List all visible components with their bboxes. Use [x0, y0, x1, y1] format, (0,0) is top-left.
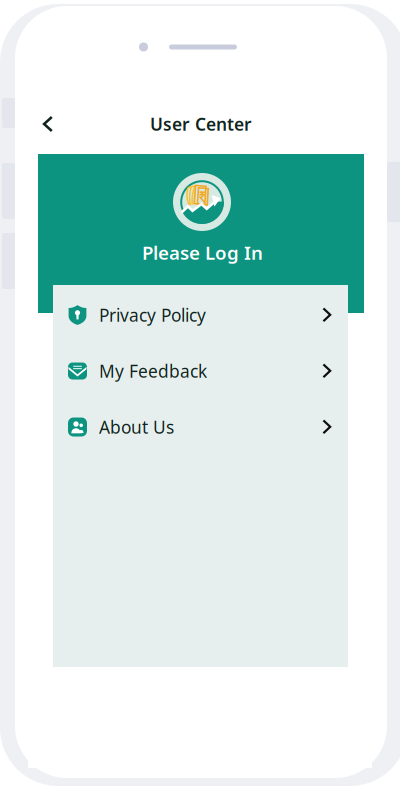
staticText: About Us: [99, 415, 174, 438]
staticText: User Center: [150, 112, 252, 135]
staticText: Privacy Policy: [99, 303, 206, 326]
button[interactable]: Back: [29, 102, 67, 146]
button[interactable]: My Feedback: [53, 343, 348, 399]
staticText: My Feedback: [99, 359, 207, 382]
button[interactable]: Privacy Policy: [53, 287, 348, 343]
button[interactable]: About Us: [53, 399, 348, 455]
staticText: Please Log In: [142, 240, 263, 265]
